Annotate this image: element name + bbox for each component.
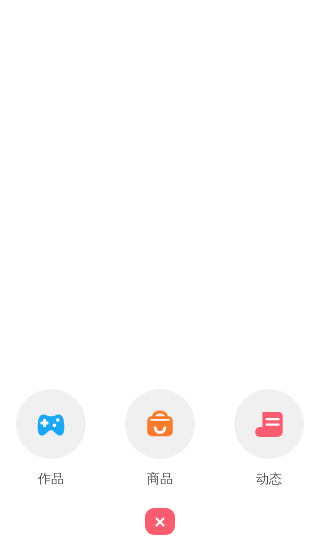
button[interactable]: 动态 — [234, 389, 304, 486]
button[interactable]: 作品 — [16, 389, 86, 486]
staticText: 商品 — [147, 470, 173, 486]
staticText: 作品 — [38, 470, 64, 486]
button[interactable]: 商品 — [125, 389, 195, 486]
button[interactable]: Close — [145, 508, 175, 535]
staticText: 动态 — [256, 470, 282, 486]
